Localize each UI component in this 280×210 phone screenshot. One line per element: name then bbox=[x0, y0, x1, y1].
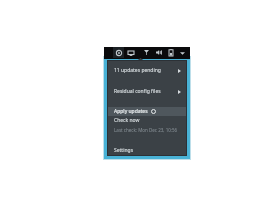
button[interactable]: Volume bbox=[154, 48, 163, 57]
staticText: Check now bbox=[114, 117, 140, 124]
button[interactable]: Residual config files bbox=[108, 87, 186, 96]
staticText: 11 updates pending bbox=[114, 67, 161, 74]
staticText: Settings bbox=[114, 147, 134, 154]
button[interactable]: Battery bbox=[166, 48, 175, 57]
button[interactable]: Apply updates bbox=[108, 107, 186, 116]
button[interactable]: Check now bbox=[108, 116, 186, 125]
staticText: Apply updates bbox=[114, 108, 148, 115]
button[interactable]: 11 updates pending bbox=[108, 66, 186, 75]
button[interactable]: Network bbox=[142, 48, 151, 57]
button[interactable]: Updates bbox=[113, 47, 124, 58]
button[interactable]: Display bbox=[126, 48, 136, 58]
button[interactable]: Settings bbox=[108, 146, 186, 155]
button[interactable]: Show hidden icons bbox=[178, 49, 186, 57]
staticText: Residual config files bbox=[114, 88, 161, 95]
staticText: Last check: Mon Dec 23, 10:56 bbox=[114, 127, 178, 133]
